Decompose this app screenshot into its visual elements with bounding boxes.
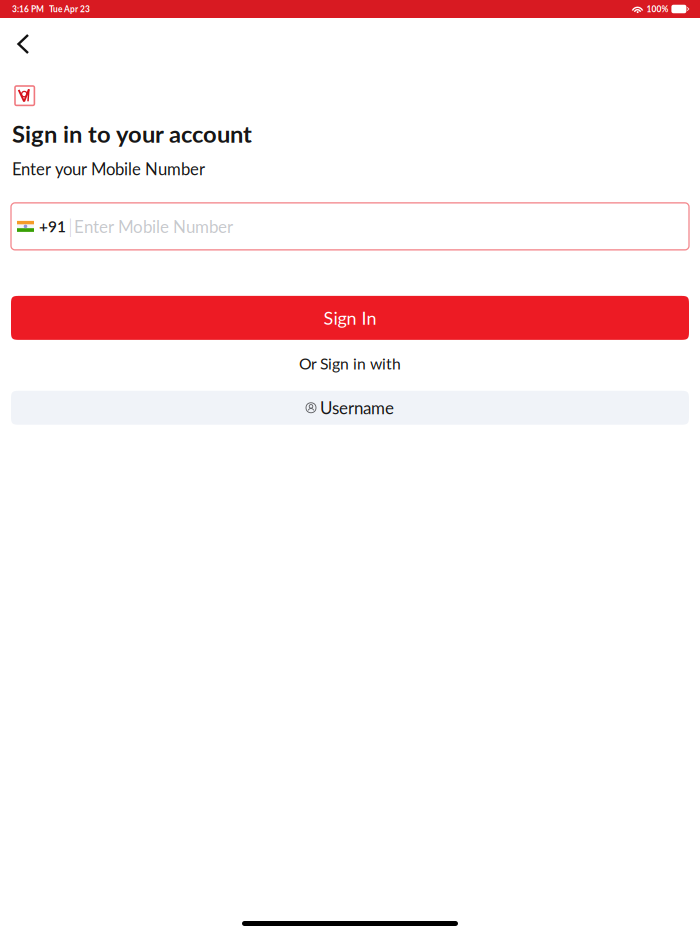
staticText: 100%	[646, 4, 668, 14]
staticText: Sign In	[323, 307, 376, 329]
staticText: Username	[320, 398, 394, 418]
staticText: +91	[39, 217, 66, 236]
staticText: Or Sign in with	[299, 354, 401, 373]
staticText: 3:16 PM	[12, 4, 44, 14]
staticText: |	[68, 214, 73, 238]
staticText: Sign in to your account	[12, 119, 252, 148]
staticText: Tue Apr 23	[49, 4, 90, 14]
staticText: Enter your Mobile Number	[12, 159, 205, 179]
button[interactable]: +91	[11, 203, 689, 250]
button[interactable]: Back	[0, 18, 43, 67]
button[interactable]: Sign In	[0, 296, 700, 340]
button[interactable]: Username	[0, 391, 700, 425]
staticText: Enter Mobile Number	[74, 216, 233, 236]
